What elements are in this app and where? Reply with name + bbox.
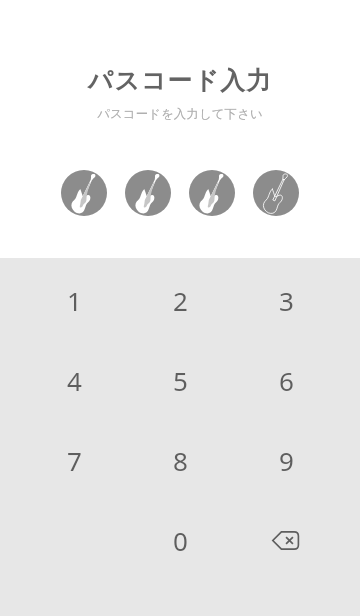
button[interactable]: 0 [127, 500, 233, 580]
staticText: 7 [67, 443, 82, 478]
staticText: 5 [173, 363, 188, 398]
button[interactable]: 4 [21, 340, 127, 420]
button[interactable]: Delete [233, 500, 339, 580]
button[interactable]: 3 [233, 260, 339, 340]
staticText: 9 [279, 443, 294, 478]
button[interactable]: 8 [127, 420, 233, 500]
staticText: 6 [279, 363, 294, 398]
staticText: 4 [67, 363, 82, 398]
button[interactable]: 5 [127, 340, 233, 420]
staticText: 2 [173, 283, 188, 318]
staticText: 8 [173, 443, 188, 478]
staticText: パスコードを入力して下さい [0, 106, 360, 122]
button[interactable]: 1 [21, 260, 127, 340]
button[interactable]: 6 [233, 340, 339, 420]
other: Delete [271, 525, 301, 555]
staticText: 3 [279, 283, 294, 318]
button[interactable]: 9 [233, 420, 339, 500]
staticText: 1 [67, 283, 82, 318]
button[interactable]: 7 [21, 420, 127, 500]
staticText: パスコード入力 [0, 65, 360, 96]
button[interactable]: 2 [127, 260, 233, 340]
staticText: 0 [173, 523, 188, 558]
